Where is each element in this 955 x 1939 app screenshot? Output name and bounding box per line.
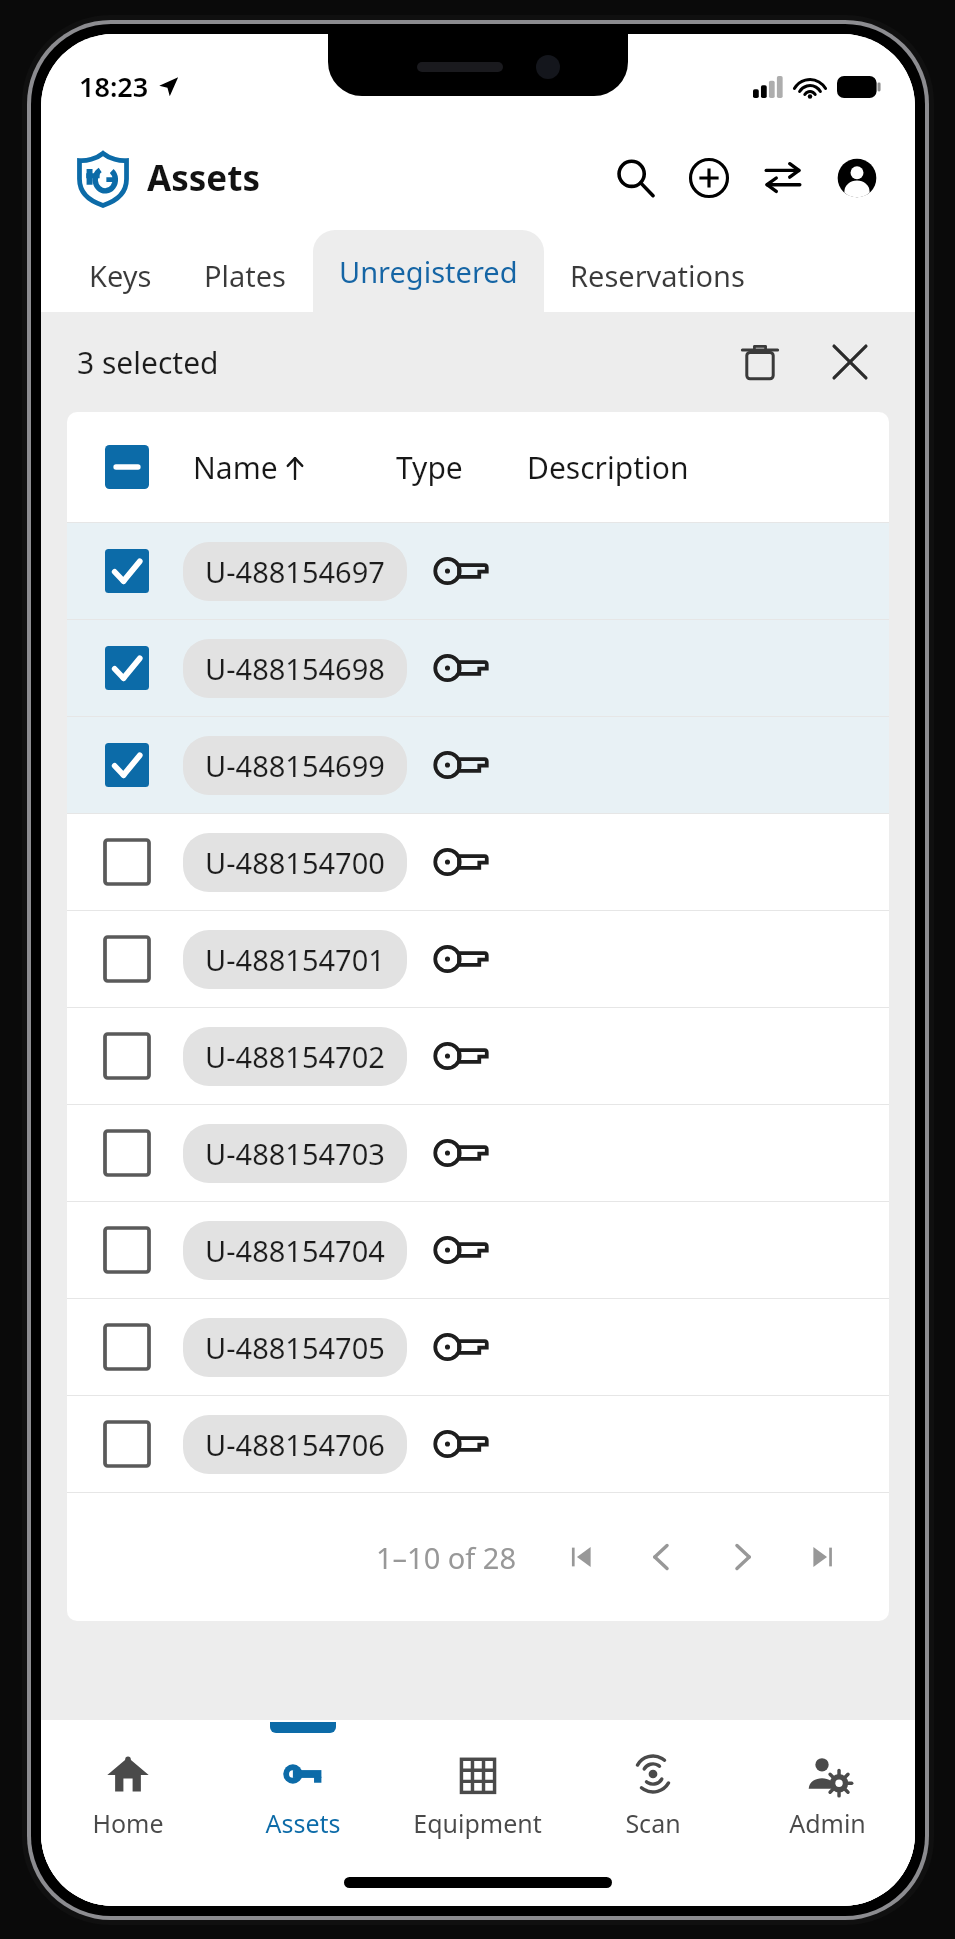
button[interactable]: Select U-488154700	[99, 834, 155, 890]
staticText: U-488154700	[205, 843, 385, 882]
button[interactable]: Last page	[791, 1526, 853, 1588]
button[interactable]: Keys	[63, 238, 178, 312]
staticText: U-488154699	[205, 746, 385, 785]
button[interactable]: Reservations	[544, 238, 771, 312]
staticText: Plates	[204, 256, 287, 295]
staticText: U-488154704	[205, 1231, 385, 1270]
staticText: U-488154702	[205, 1037, 385, 1076]
other: Logo	[75, 150, 131, 206]
staticText: Reservations	[570, 256, 745, 295]
button[interactable]: Deselect U-488154698	[99, 640, 155, 696]
staticText: Keys	[89, 256, 152, 295]
button[interactable]: Select U-488154705	[67, 1299, 889, 1395]
button[interactable]: Close	[819, 331, 881, 393]
button[interactable]: Select U-488154703	[67, 1105, 889, 1201]
button[interactable]: Delete	[729, 331, 791, 393]
button[interactable]: Select U-488154706	[67, 1396, 889, 1492]
staticText: U-488154701	[205, 940, 385, 979]
staticText: Description	[527, 447, 689, 488]
button[interactable]: Deselect U-488154699	[67, 717, 889, 813]
button[interactable]: Select U-488154704	[67, 1202, 889, 1298]
button[interactable]: Select U-488154701	[99, 931, 155, 987]
staticText: Type	[396, 447, 463, 488]
button[interactable]: Select U-488154701	[67, 911, 889, 1007]
staticText: U-488154697	[205, 552, 385, 591]
staticText: Assets	[265, 1806, 341, 1840]
button[interactable]: Assets	[215, 1720, 390, 1858]
button[interactable]: Equipment	[390, 1720, 565, 1858]
staticText: Home	[92, 1806, 164, 1840]
staticText: Unregistered	[339, 252, 518, 291]
button[interactable]: Select U-488154702	[99, 1028, 155, 1084]
button[interactable]: Previous page	[631, 1526, 693, 1588]
staticText: Scan	[625, 1806, 681, 1840]
staticText: U-488154703	[205, 1134, 385, 1173]
button[interactable]: Admin	[740, 1720, 915, 1858]
button[interactable]: Select U-488154705	[99, 1319, 155, 1375]
button[interactable]: Deselect U-488154699	[99, 737, 155, 793]
button[interactable]: Deselect U-488154697	[99, 543, 155, 599]
button[interactable]: Select all	[99, 439, 155, 495]
button[interactable]: Select U-488154704	[99, 1222, 155, 1278]
button[interactable]: Next page	[711, 1526, 773, 1588]
button[interactable]: First page	[551, 1526, 613, 1588]
button[interactable]: Scan	[565, 1720, 740, 1858]
button[interactable]: Deselect U-488154697	[67, 523, 889, 619]
button[interactable]: Name	[193, 447, 308, 488]
button[interactable]: Select U-488154700	[67, 814, 889, 910]
button[interactable]: Select U-488154702	[67, 1008, 889, 1104]
button[interactable]: Home	[41, 1720, 215, 1858]
staticText: Assets	[147, 154, 261, 202]
button[interactable]: Add	[681, 150, 737, 206]
button[interactable]: Account	[829, 150, 885, 206]
button[interactable]: Select U-488154706	[99, 1416, 155, 1472]
staticText: U-488154706	[205, 1425, 385, 1464]
button[interactable]: Plates	[178, 238, 313, 312]
staticText: Admin	[789, 1806, 866, 1840]
button[interactable]: Unregistered	[313, 230, 544, 312]
staticText: 3 selected	[77, 342, 219, 383]
button[interactable]: Search	[607, 150, 663, 206]
button[interactable]: Deselect U-488154698	[67, 620, 889, 716]
staticText: U-488154698	[205, 649, 385, 688]
staticText: Name	[193, 447, 278, 488]
staticText: U-488154705	[205, 1328, 385, 1367]
staticText: Equipment	[413, 1806, 542, 1840]
button[interactable]: Select U-488154703	[99, 1125, 155, 1181]
staticText: 18:23	[79, 68, 149, 105]
staticText: 1–10 of 28	[376, 1538, 517, 1577]
button[interactable]: Transfer	[755, 150, 811, 206]
